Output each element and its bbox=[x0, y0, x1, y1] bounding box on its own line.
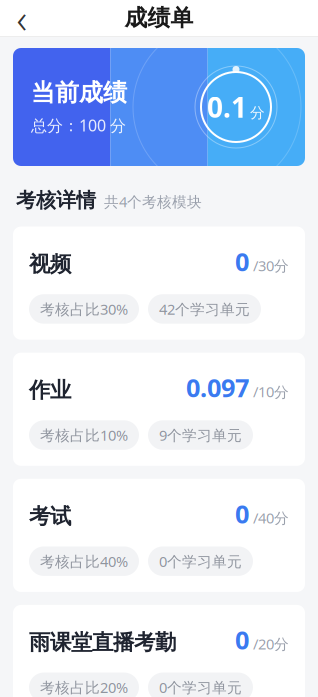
staticText: 成绩单 bbox=[124, 4, 193, 32]
staticText: ‹ bbox=[16, 0, 27, 44]
staticText: 9个学习单元 bbox=[159, 425, 242, 445]
staticText: 视频 bbox=[29, 251, 71, 277]
staticText: 考核占比20% bbox=[40, 678, 128, 697]
staticText: 42个学习单元 bbox=[159, 299, 250, 319]
staticText: 0个学习单元 bbox=[159, 678, 242, 697]
staticText: 共4个考核模块 bbox=[104, 192, 202, 211]
staticText: 分 bbox=[250, 104, 265, 122]
staticText: 考核详情 bbox=[16, 188, 96, 213]
staticText: /10分 bbox=[249, 382, 289, 401]
staticText: 考试 bbox=[29, 503, 71, 529]
staticText: 雨课堂直播考勤 bbox=[29, 629, 176, 656]
staticText: 0.097 bbox=[186, 371, 249, 404]
staticText: 0.1 bbox=[207, 88, 247, 126]
staticText: 作业 bbox=[29, 377, 71, 403]
staticText: /20分 bbox=[249, 634, 289, 654]
staticText: /30分 bbox=[249, 256, 289, 275]
staticText: 0个学习单元 bbox=[159, 551, 242, 571]
staticText: 考核占比30% bbox=[40, 299, 128, 319]
button[interactable]: 作业 bbox=[13, 353, 305, 466]
staticText: 总分：100 分 bbox=[31, 115, 126, 136]
staticText: 当前成绩 bbox=[31, 78, 127, 108]
button[interactable]: 视频 bbox=[13, 227, 305, 340]
button[interactable]: 雨课堂直播考勤 bbox=[13, 605, 305, 697]
staticText: 0 bbox=[235, 245, 249, 278]
staticText: 考核占比40% bbox=[40, 551, 128, 571]
button[interactable]: Back bbox=[0, 0, 44, 36]
staticText: 0 bbox=[235, 623, 249, 656]
staticText: /40分 bbox=[249, 508, 289, 527]
staticText: 0 bbox=[235, 497, 249, 530]
button[interactable]: 考试 bbox=[13, 479, 305, 592]
staticText: 考核占比10% bbox=[40, 425, 128, 445]
